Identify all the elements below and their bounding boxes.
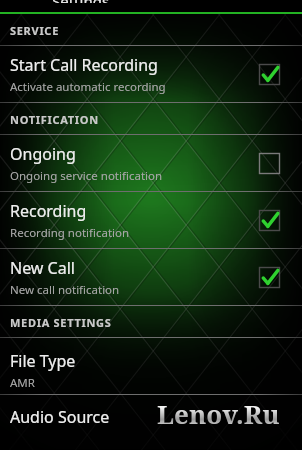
staticText: File Type [10,350,76,372]
button[interactable]: Ongoing [0,135,302,191]
button[interactable]: App icon [0,0,302,12]
button[interactable]: Recording [0,192,302,248]
staticText: Lenov.Ru [157,396,280,431]
staticText: Activate automatic recording [10,79,166,95]
staticText: Start Call Recording [10,54,158,76]
button[interactable]: Audio Source [0,395,302,430]
staticText: AMR [10,375,35,391]
button[interactable]: Checked [259,267,280,288]
button[interactable]: Checked [259,210,280,231]
staticText: Settings [52,0,110,3]
staticText: Ongoing [10,143,76,165]
staticText: SERVICE [10,23,59,38]
button[interactable]: Start Call Recording [0,46,302,102]
staticText: Recording notification [10,225,130,241]
staticText: Audio Source [10,406,110,428]
button[interactable]: New Call [0,249,302,305]
staticText: Recording [10,200,87,222]
staticText: MEDIA SETTINGS [10,315,112,330]
button[interactable]: Unchecked [259,153,280,174]
staticText: Ongoing service notification [10,168,163,184]
staticText: New Call [10,257,75,279]
staticText: NOTIFICATION [10,112,99,127]
button[interactable]: File Type [0,338,302,394]
staticText: New call notification [10,282,120,298]
button[interactable]: Checked [259,64,280,85]
